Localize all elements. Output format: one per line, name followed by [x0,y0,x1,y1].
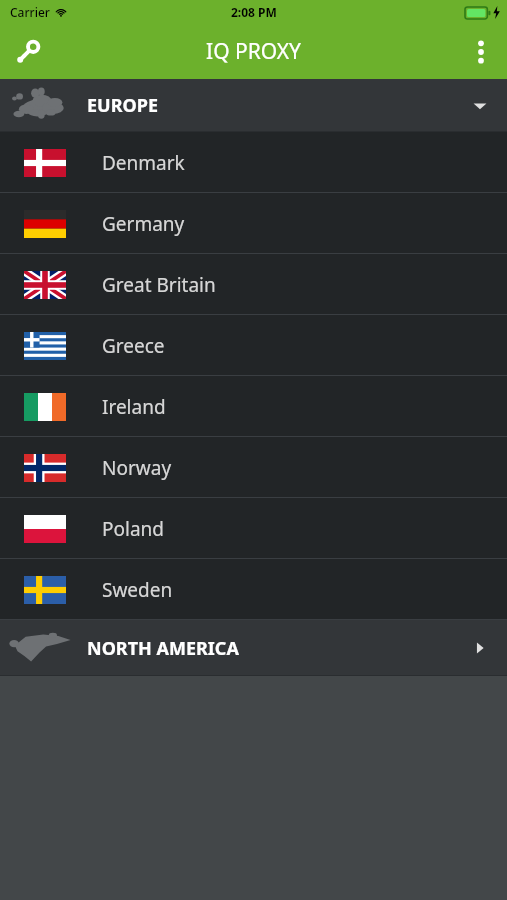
staticText: Sweden [102,577,173,603]
staticText: NORTH AMERICA [87,636,239,661]
button[interactable]: Germany [0,193,507,254]
staticText: 2:08 PM [231,4,277,20]
button[interactable]: Great Britain [0,254,507,315]
button[interactable]: Ireland [0,376,507,437]
staticText: Norway [102,455,172,481]
button[interactable]: Denmark [0,132,507,193]
staticText: EUROPE [87,93,158,118]
staticText: Greece [102,333,165,359]
staticText: Ireland [102,394,166,420]
staticText: Poland [102,516,164,542]
button[interactable]: More options [455,26,507,78]
staticText: Great Britain [102,272,216,298]
button[interactable]: Norway [0,437,507,498]
staticText: IQ PROXY [206,37,301,66]
staticText: Carrier [10,4,50,20]
staticText: Denmark [102,150,185,176]
button[interactable]: Greece [0,315,507,376]
button[interactable]: Sweden [0,559,507,620]
button[interactable]: EUROPE [0,79,507,132]
button[interactable]: NORTH AMERICA [0,620,507,676]
button[interactable]: Poland [0,498,507,559]
button[interactable]: Key [0,24,56,79]
staticText: Germany [102,211,185,237]
